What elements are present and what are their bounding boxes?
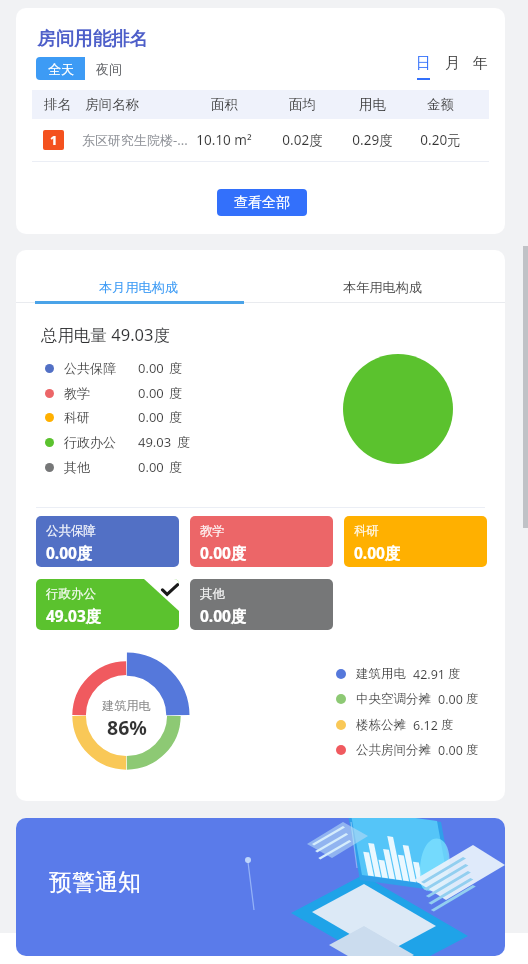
button[interactable]: 全天 <box>36 57 85 80</box>
staticText: 年 <box>473 54 488 73</box>
staticText: 查看全部 <box>234 194 290 212</box>
button[interactable]: 行政办公 <box>36 579 179 630</box>
staticText: 0.00 <box>138 408 164 426</box>
staticText: 面积 <box>211 96 238 113</box>
staticText: 东区研究生院楼-... <box>82 131 188 149</box>
staticText: 房间名称 <box>85 96 139 113</box>
staticText: 0.00 <box>438 742 463 759</box>
staticText: 教学 <box>200 523 225 539</box>
staticText: 0.00 <box>138 384 164 402</box>
staticText: 建筑用电 <box>102 698 151 713</box>
staticText: 42.91 <box>413 666 445 683</box>
staticText: 房间用能排名 <box>37 27 148 49</box>
staticText: 公共保障 <box>64 360 116 376</box>
staticText: 10.10 m² <box>196 131 252 149</box>
staticText: 度 <box>466 691 479 707</box>
staticText: 楼栋公摊 <box>356 717 406 733</box>
staticText: 度 <box>169 360 182 376</box>
staticText: 0.00度 <box>200 542 247 563</box>
button[interactable]: 科研 <box>344 516 487 567</box>
staticText: 度 <box>177 434 190 450</box>
staticText: 面均 <box>289 96 316 113</box>
staticText: 49.03度 <box>46 605 102 626</box>
button[interactable]: 本年用电构成 <box>261 250 505 301</box>
staticText: 其他 <box>64 459 90 475</box>
staticText: 度 <box>169 459 182 475</box>
staticText: 0.00 <box>138 359 164 377</box>
staticText: 月 <box>445 54 460 73</box>
button[interactable]: 查看全部 <box>217 189 307 216</box>
staticText: 排名 <box>44 96 71 113</box>
staticText: 夜间 <box>96 61 122 77</box>
staticText: 0.00度 <box>354 542 401 563</box>
staticText: 金额 <box>427 96 454 113</box>
staticText: 其他 <box>200 586 225 602</box>
staticText: 0.00度 <box>46 542 93 563</box>
staticText: 行政办公 <box>64 434 116 450</box>
button[interactable]: 公共保障 <box>36 516 179 567</box>
staticText: 本年用电构成 <box>343 279 423 296</box>
staticText: 6.12 <box>413 717 438 734</box>
staticText: 0.02度 <box>282 131 323 149</box>
button[interactable]: 其他 <box>190 579 333 630</box>
staticText: 建筑用电 <box>356 666 406 682</box>
staticText: 日 <box>416 54 431 73</box>
staticText: 度 <box>441 717 454 733</box>
staticText: 科研 <box>64 409 90 425</box>
button[interactable]: 年 <box>467 52 493 74</box>
staticText: 中央空调分摊 <box>356 691 431 707</box>
button[interactable]: 本月用电构成 <box>16 250 261 301</box>
staticText: 行政办公 <box>46 586 96 602</box>
staticText: 度 <box>169 409 182 425</box>
staticText: 0.00 <box>438 691 463 708</box>
staticText: 1 <box>50 131 58 149</box>
staticText: 0.20元 <box>420 131 461 149</box>
staticText: 教学 <box>64 385 90 401</box>
staticText: 0.29度 <box>352 131 393 149</box>
staticText: 49.03 <box>138 433 172 451</box>
staticText: 86% <box>107 714 147 741</box>
staticText: 度 <box>466 742 479 758</box>
button[interactable]: 1 <box>32 119 489 161</box>
staticText: 预警通知 <box>49 868 141 897</box>
staticText: 全天 <box>48 61 74 77</box>
staticText: 公共房间分摊 <box>356 742 431 758</box>
staticText: 用电 <box>359 96 386 113</box>
staticText: 0.00 <box>138 458 164 476</box>
button[interactable]: 日 <box>410 52 436 80</box>
staticText: 总用电量 49.03度 <box>41 323 170 346</box>
staticText: 本月用电构成 <box>99 279 179 296</box>
staticText: 公共保障 <box>46 523 96 539</box>
staticText: 度 <box>169 385 182 401</box>
staticText: 科研 <box>354 523 379 539</box>
button[interactable]: 夜间 <box>85 57 132 80</box>
button[interactable]: 教学 <box>190 516 333 567</box>
staticText: 0.00度 <box>200 605 247 626</box>
staticText: 度 <box>448 666 461 682</box>
button[interactable]: 预警通知 <box>16 818 505 956</box>
button[interactable]: 月 <box>439 52 465 74</box>
